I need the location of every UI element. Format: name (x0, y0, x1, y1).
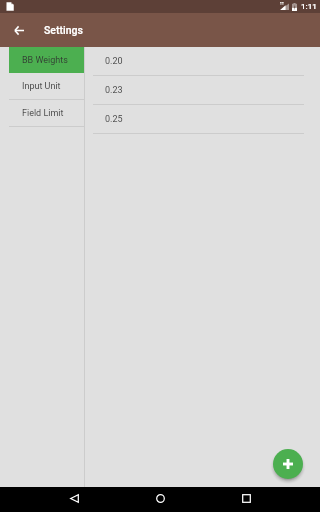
button[interactable]: Back (0, 13, 34, 47)
button[interactable]: Field Limit (9, 100, 85, 126)
button[interactable]: Back (58, 487, 90, 512)
button[interactable]: 0.20 (85, 47, 320, 75)
staticText: BB Weights (22, 55, 68, 66)
button[interactable]: Recents (230, 487, 262, 512)
button[interactable]: Home (144, 487, 176, 512)
staticText: 0.25 (105, 114, 123, 125)
staticText: Settings (44, 24, 83, 36)
staticText: Field Limit (22, 108, 64, 119)
staticText: 0.20 (105, 56, 123, 67)
button[interactable]: BB Weights (9, 47, 85, 73)
button[interactable]: 0.25 (85, 105, 320, 133)
button[interactable]: Add (273, 449, 303, 479)
staticText: Input Unit (22, 81, 61, 92)
button[interactable]: 0.23 (85, 76, 320, 104)
staticText: 1:11 (301, 2, 317, 11)
staticText: 0.23 (105, 85, 123, 96)
button[interactable]: Input Unit (9, 73, 85, 99)
